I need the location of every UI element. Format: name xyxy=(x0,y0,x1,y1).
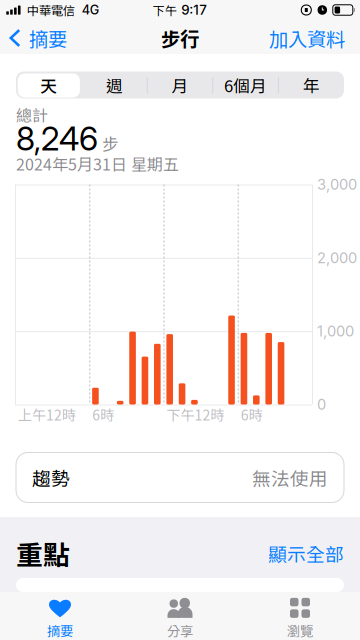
staticText: 步 xyxy=(102,131,119,155)
button[interactable]: 6個月 xyxy=(213,71,278,98)
staticText: 總計 xyxy=(16,103,48,126)
staticText: 重點 xyxy=(16,534,70,573)
staticText: 摘要 xyxy=(47,621,73,640)
button[interactable]: 天 xyxy=(16,71,82,98)
staticText: 摘要 xyxy=(29,24,67,52)
button[interactable]: 瀏覽 xyxy=(240,598,360,640)
staticText: 趨勢 xyxy=(32,464,70,491)
staticText: 2,000 xyxy=(317,249,357,267)
button[interactable]: 月 xyxy=(147,71,213,98)
staticText: 3,000 xyxy=(317,176,357,193)
staticText: 顯示全部 xyxy=(268,540,344,567)
staticText: 分享 xyxy=(167,621,193,640)
staticText: 年 xyxy=(303,73,320,97)
staticText: 下午12時 xyxy=(166,404,224,425)
button[interactable]: 年 xyxy=(278,71,344,98)
staticText: 瀏覽 xyxy=(287,621,313,640)
staticText: 加入資料 xyxy=(269,24,345,52)
staticText: 6時 xyxy=(92,404,114,425)
staticText: 天 xyxy=(40,73,57,97)
staticText: 6個月 xyxy=(224,73,267,97)
staticText: 4G xyxy=(82,2,99,18)
staticText: 無法使用 xyxy=(252,464,328,491)
staticText: 上午12時 xyxy=(18,404,76,425)
staticText: 步行 xyxy=(161,24,199,52)
button[interactable]: 趨勢 xyxy=(0,452,360,502)
button[interactable]: 摘要 xyxy=(0,598,120,640)
staticText: 週 xyxy=(106,73,123,97)
staticText: 8,246 xyxy=(16,119,98,158)
staticText: 2024年5月31日 星期五 xyxy=(16,152,179,175)
staticText: 6時 xyxy=(241,404,263,425)
button[interactable]: 顯示全部 xyxy=(268,536,344,571)
button[interactable]: 加入資料 xyxy=(269,19,360,57)
staticText: 中華電信 xyxy=(27,1,75,19)
button[interactable]: 週 xyxy=(82,71,147,98)
staticText: 月 xyxy=(171,73,188,97)
staticText: 0 xyxy=(317,396,326,413)
staticText: 9:17 xyxy=(181,2,207,18)
staticText: 1,000 xyxy=(317,322,354,340)
staticText: 下午 xyxy=(153,1,177,19)
button[interactable]: 分享 xyxy=(120,598,240,640)
button[interactable]: 摘要 xyxy=(0,19,67,57)
